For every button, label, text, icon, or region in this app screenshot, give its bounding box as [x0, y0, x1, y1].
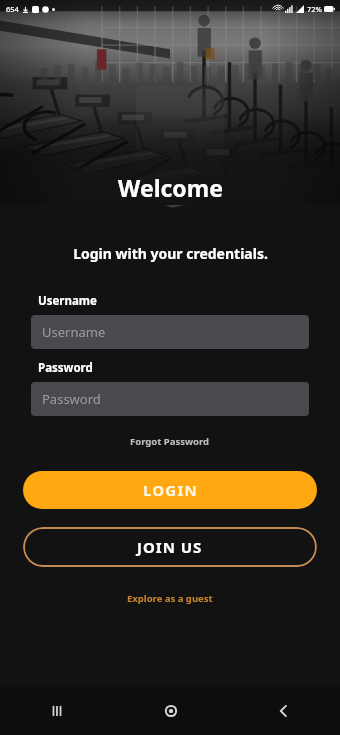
button[interactable]: Password — [31, 382, 309, 416]
button[interactable]: Forgot Password — [122, 432, 218, 451]
staticText: LOGIN — [143, 480, 198, 500]
staticText: Username — [42, 323, 106, 341]
staticText: Forgot Password — [130, 435, 210, 448]
staticText: Welcome — [118, 172, 223, 203]
staticText: 654 — [6, 4, 19, 14]
button[interactable]: LOGIN — [23, 471, 317, 509]
button[interactable]: Recents — [0, 687, 114, 735]
button[interactable]: Username — [31, 315, 309, 349]
button[interactable]: Home — [114, 687, 227, 735]
staticText: Password — [38, 360, 93, 376]
staticText: 72% — [307, 4, 322, 14]
button[interactable]: Back — [227, 687, 340, 735]
staticText: Login with your credentials. — [73, 244, 268, 263]
staticText: Username — [38, 293, 97, 309]
staticText: Explore as a guest — [127, 592, 213, 605]
button[interactable]: Explore as a guest — [119, 589, 221, 608]
button[interactable]: JOIN US — [23, 527, 317, 567]
staticText: Password — [42, 390, 101, 408]
staticText: JOIN US — [137, 537, 203, 557]
